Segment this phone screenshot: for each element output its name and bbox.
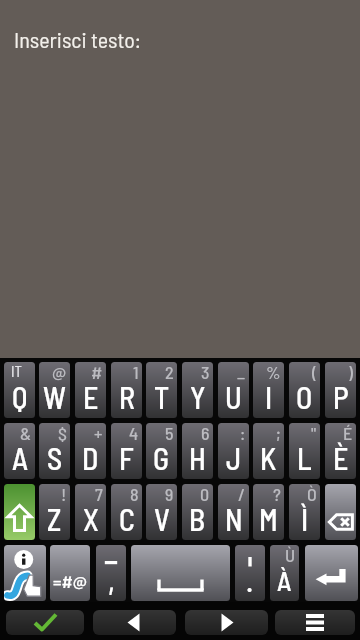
staticText: =#@: [53, 570, 88, 592]
staticText: !: [61, 484, 67, 505]
button[interactable]: H: [182, 423, 213, 479]
staticText: Ì: [301, 501, 309, 537]
staticText: ): [348, 362, 353, 383]
staticText: Ù: [285, 545, 296, 566]
button[interactable]: W: [39, 362, 70, 418]
button[interactable]: E: [75, 362, 106, 418]
button[interactable]: Confirm: [6, 610, 84, 635]
staticText: M: [259, 501, 278, 537]
staticText: L: [297, 440, 312, 476]
button[interactable]: B: [182, 484, 213, 540]
staticText: ;: [276, 423, 281, 444]
staticText: 7: [95, 484, 103, 505]
staticText: @: [52, 362, 67, 383]
staticText: +: [94, 423, 103, 444]
button[interactable]: S: [39, 423, 70, 479]
staticText: $: [58, 423, 67, 444]
staticText: Z: [47, 501, 62, 537]
staticText: O: [296, 379, 313, 415]
button[interactable]: K: [253, 423, 284, 479]
button[interactable]: Ì: [289, 484, 320, 540]
staticText: 2: [165, 362, 174, 383]
staticText: _: [237, 362, 246, 383]
button[interactable]: Shift: [4, 484, 35, 540]
button[interactable]: Enter: [305, 545, 358, 601]
button[interactable]: Symbols: [50, 545, 90, 601]
button[interactable]: M: [253, 484, 284, 540]
button[interactable]: Space: [131, 545, 230, 601]
staticText: F: [119, 440, 134, 476]
button[interactable]: T: [146, 362, 177, 418]
staticText: È: [333, 440, 349, 476]
staticText: 4: [129, 423, 139, 444]
staticText: %: [266, 362, 281, 383]
button[interactable]: V: [146, 484, 177, 540]
button[interactable]: Backspace: [325, 484, 356, 540]
staticText: ?: [273, 484, 281, 505]
button[interactable]: Handwriting input: [4, 545, 46, 601]
staticText: T: [154, 379, 170, 415]
button[interactable]: D: [75, 423, 106, 479]
staticText: R: [119, 379, 135, 415]
staticText: À: [277, 564, 292, 596]
staticText: .: [246, 562, 254, 598]
button[interactable]: J: [218, 423, 249, 479]
staticText: 8: [130, 484, 139, 505]
staticText: Inserisci testo:: [14, 26, 141, 52]
button[interactable]: ,: [96, 545, 126, 601]
staticText: U: [225, 379, 242, 415]
button[interactable]: G: [146, 423, 177, 479]
staticText: Ò: [307, 484, 317, 505]
button[interactable]: U: [218, 362, 249, 418]
staticText: J: [226, 440, 242, 476]
button[interactable]: A: [4, 423, 35, 479]
button[interactable]: À: [270, 545, 299, 601]
staticText: ,: [108, 562, 115, 598]
button[interactable]: F: [111, 423, 142, 479]
staticText: /: [238, 484, 246, 505]
button[interactable]: I: [253, 362, 284, 418]
staticText: P: [333, 379, 349, 415]
staticText: ": [311, 423, 317, 444]
staticText: C: [119, 501, 135, 537]
staticText: 0: [200, 484, 210, 505]
staticText: B: [189, 501, 206, 537]
staticText: I: [265, 379, 273, 415]
staticText: H: [189, 440, 206, 476]
staticText: X: [83, 501, 99, 537]
button[interactable]: R: [111, 362, 142, 418]
button[interactable]: Z: [39, 484, 70, 540]
button[interactable]: Forward: [185, 610, 268, 635]
staticText: :: [240, 423, 246, 444]
staticText: Y: [190, 379, 206, 415]
staticText: W: [43, 379, 66, 415]
button[interactable]: P: [325, 362, 356, 418]
button[interactable]: O: [289, 362, 320, 418]
staticText: S: [47, 440, 63, 476]
button[interactable]: N: [218, 484, 249, 540]
staticText: #: [91, 362, 103, 383]
staticText: 9: [165, 484, 174, 505]
staticText: K: [260, 440, 277, 476]
button[interactable]: Menu: [275, 610, 355, 635]
button[interactable]: È: [325, 423, 356, 479]
button[interactable]: Q: [4, 362, 35, 418]
button[interactable]: .: [235, 545, 265, 601]
staticText: IT: [11, 362, 22, 380]
button[interactable]: L: [289, 423, 320, 479]
button[interactable]: Back: [93, 610, 176, 635]
staticText: D: [82, 440, 99, 476]
button[interactable]: C: [111, 484, 142, 540]
staticText: 6: [201, 423, 210, 444]
button[interactable]: Y: [182, 362, 213, 418]
button[interactable]: X: [75, 484, 106, 540]
staticText: G: [153, 440, 170, 476]
staticText: 3: [201, 362, 210, 383]
staticText: &: [20, 423, 32, 444]
staticText: É: [343, 423, 353, 444]
staticText: 1: [133, 362, 139, 383]
staticText: E: [83, 379, 99, 415]
staticText: V: [154, 501, 170, 537]
staticText: N: [225, 501, 243, 537]
staticText: Q: [12, 379, 28, 415]
